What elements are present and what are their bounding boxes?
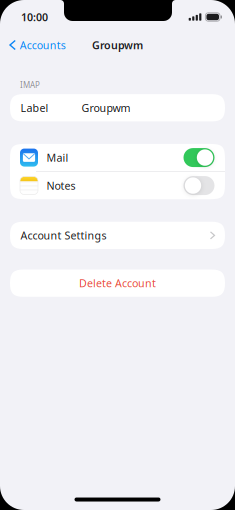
staticText: Label xyxy=(20,101,48,115)
button[interactable]: Delete Account xyxy=(10,269,225,297)
button[interactable]: Mail xyxy=(183,148,214,167)
button[interactable]: Notes xyxy=(183,176,214,195)
staticText: IMAP xyxy=(20,79,40,90)
staticText: Mail xyxy=(46,150,68,165)
staticText: Delete Account xyxy=(79,276,156,290)
staticText: Account Settings xyxy=(20,228,106,242)
button[interactable]: Accounts xyxy=(0,33,74,57)
button[interactable]: Account Settings xyxy=(10,222,225,249)
staticText: Groupwm xyxy=(81,101,130,115)
staticText: Groupwm xyxy=(92,38,143,52)
staticText: Accounts xyxy=(20,38,66,52)
button[interactable]: Label xyxy=(10,94,225,121)
staticText: 10:00 xyxy=(21,10,48,24)
staticText: Notes xyxy=(46,178,75,193)
